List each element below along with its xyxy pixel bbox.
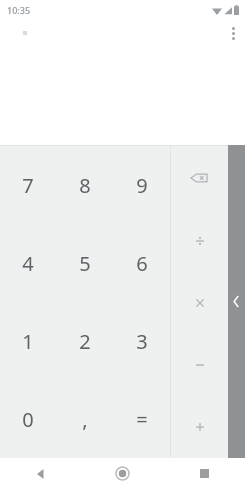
staticText: 7 — [22, 172, 34, 199]
button[interactable]: 1 — [0, 302, 56, 380]
button[interactable]: 9 — [113, 146, 170, 224]
staticText: 10:35 — [7, 4, 31, 16]
staticText: 4 — [22, 250, 34, 277]
button[interactable]: 6 — [113, 224, 170, 302]
button[interactable]: Backspace — [171, 146, 228, 209]
staticText: 5 — [79, 250, 91, 277]
button[interactable]: Open history panel — [228, 145, 245, 458]
button[interactable]: 0 — [0, 380, 56, 458]
button[interactable]: 2 — [56, 302, 113, 380]
staticText: 6 — [136, 250, 148, 277]
button[interactable]: More options — [221, 21, 245, 45]
button[interactable]: Multiply — [171, 272, 228, 334]
button[interactable]: 4 — [0, 224, 56, 302]
staticText: = — [136, 406, 148, 433]
button[interactable]: = — [113, 380, 170, 458]
staticText: 0 — [22, 406, 34, 433]
button[interactable]: Home — [81, 458, 163, 489]
button[interactable]: Minus — [171, 334, 228, 396]
staticText: , — [82, 406, 88, 433]
button[interactable]: Recent apps — [163, 458, 245, 489]
button[interactable]: 3 — [113, 302, 170, 380]
button[interactable]: 5 — [56, 224, 113, 302]
staticText: 3 — [136, 328, 148, 355]
button[interactable]: Plus — [171, 396, 228, 458]
button[interactable]: Divide — [171, 209, 228, 272]
staticText: 9 — [136, 172, 148, 199]
button[interactable]: , — [56, 380, 113, 458]
button[interactable]: Back — [0, 458, 81, 489]
staticText: 2 — [79, 328, 91, 355]
staticText: 1 — [22, 328, 34, 355]
button[interactable]: 8 — [56, 146, 113, 224]
staticText: 8 — [79, 172, 91, 199]
button[interactable]: 7 — [0, 146, 56, 224]
